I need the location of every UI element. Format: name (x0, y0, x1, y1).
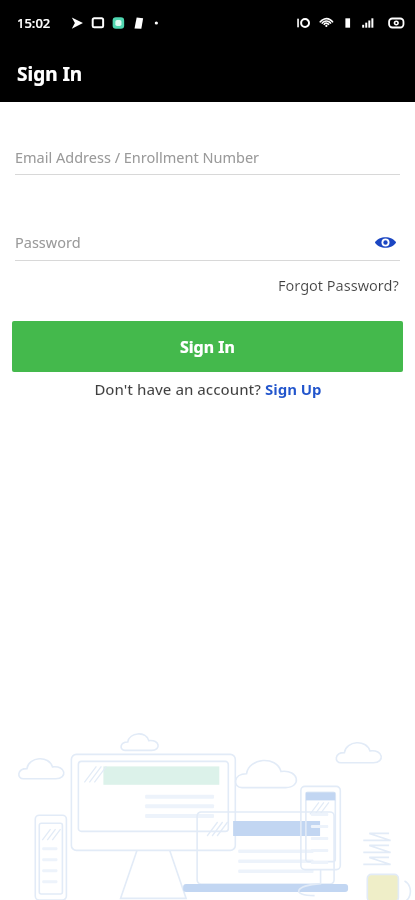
button[interactable]: Email Address / Enrollment Number (15, 147, 400, 175)
button[interactable]: Show password (370, 227, 400, 257)
button[interactable]: Password (15, 227, 400, 257)
button[interactable]: Don't have an account? Sign Up (86, 377, 330, 401)
staticText: Email Address / Enrollment Number (15, 147, 260, 167)
staticText: Sign In (17, 61, 83, 87)
button[interactable]: Sign In (12, 321, 403, 372)
button[interactable]: Forgot Password? (262, 272, 415, 298)
staticText: Password (15, 232, 370, 252)
staticText: 15:02 (17, 14, 51, 32)
staticText: Sign In (180, 336, 235, 358)
staticText: Forgot Password? (278, 275, 399, 295)
staticText: Don't have an account? Sign Up (94, 379, 322, 399)
